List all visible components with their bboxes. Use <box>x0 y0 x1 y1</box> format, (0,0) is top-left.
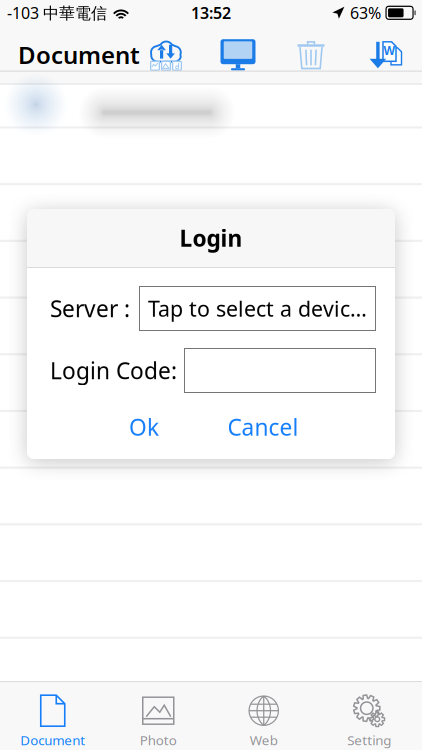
staticText: Photo <box>140 731 177 749</box>
staticText: Login Code: <box>50 355 177 385</box>
button[interactable]: Delete <box>283 26 339 84</box>
button[interactable]: Display <box>210 26 266 84</box>
staticText: 63% <box>350 2 381 23</box>
staticText: Web <box>250 731 278 749</box>
staticText: W <box>383 42 395 58</box>
staticText: -103 中華電信 <box>7 2 107 23</box>
staticText: Tap to select a devic… <box>148 294 367 323</box>
button[interactable]: Web <box>211 682 316 750</box>
button[interactable]: Cloud sync <box>138 26 194 84</box>
button[interactable]: Tap to select a devic… <box>139 286 376 331</box>
staticText: Ok <box>129 412 159 442</box>
staticText: Server : <box>50 293 130 323</box>
staticText: 13:52 <box>191 2 231 23</box>
staticText: Login <box>179 223 242 253</box>
staticText: Setting <box>347 731 391 749</box>
button[interactable]: Ok <box>101 409 187 445</box>
staticText: Cancel <box>227 412 298 442</box>
staticText: Document <box>18 39 140 71</box>
staticText: Document <box>20 731 85 749</box>
button[interactable] <box>184 348 376 393</box>
button[interactable]: Photo <box>105 682 211 750</box>
button[interactable]: Cancel <box>215 409 311 445</box>
button[interactable]: Setting <box>316 682 422 750</box>
button[interactable]: Document <box>0 682 105 750</box>
button[interactable]: Download <box>357 26 413 84</box>
